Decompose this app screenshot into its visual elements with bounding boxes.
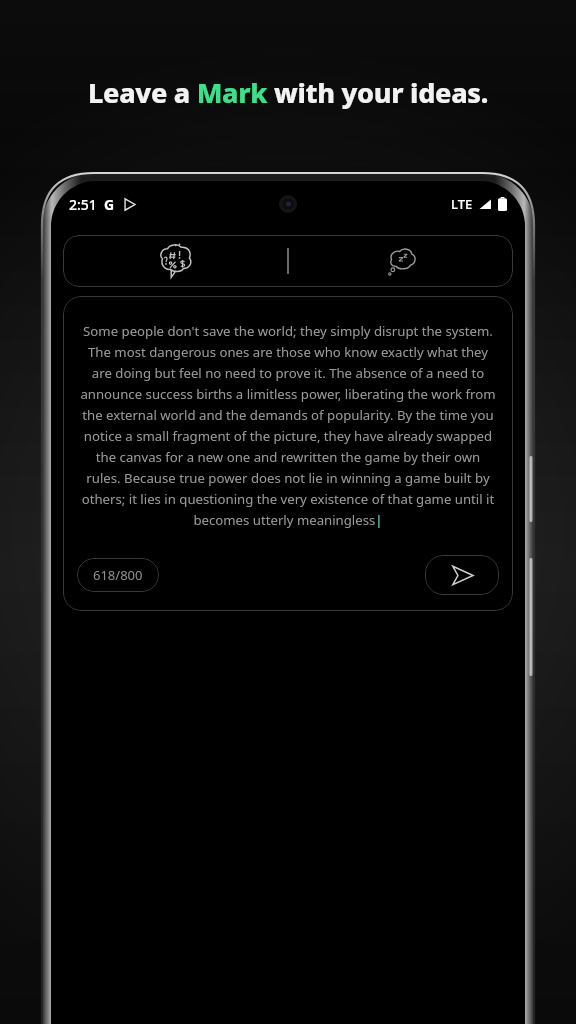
button[interactable]: 618/800 (77, 558, 159, 592)
staticText: LTE (451, 195, 473, 213)
staticText: 618/800 (93, 566, 143, 584)
button[interactable]: Dreams (289, 235, 513, 287)
staticText: 2:51 (69, 195, 97, 214)
staticText: Some people don't save the world; they s… (79, 322, 497, 529)
button[interactable]: Ideas (63, 235, 287, 287)
staticText: Leave a Mark with your ideas. (88, 74, 489, 111)
staticText: G (104, 195, 115, 214)
button[interactable]: Some people don't save the world; they s… (63, 296, 513, 611)
button[interactable]: Send (425, 555, 499, 595)
